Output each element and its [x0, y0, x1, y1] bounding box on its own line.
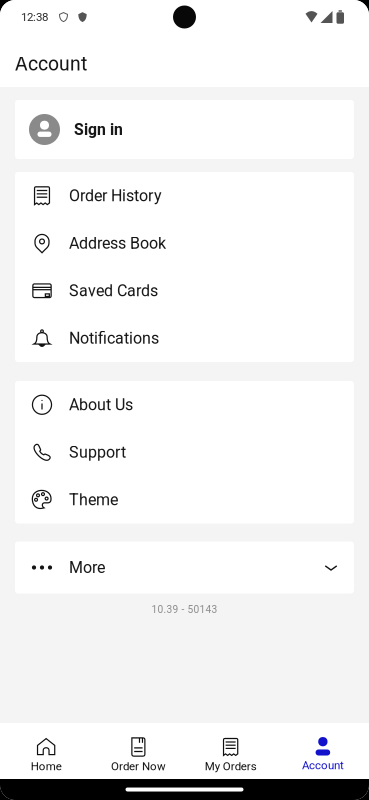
- staticText: 12:38: [21, 10, 48, 24]
- button[interactable]: Order History: [15, 172, 354, 219]
- staticText: More: [69, 558, 105, 577]
- button[interactable]: More: [15, 541, 354, 593]
- staticText: Order History: [69, 186, 162, 205]
- button[interactable]: Account: [277, 723, 369, 779]
- button[interactable]: Support: [15, 428, 354, 476]
- staticText: Support: [69, 443, 126, 462]
- staticText: Notifications: [69, 329, 159, 348]
- staticText: Account: [15, 53, 87, 75]
- button[interactable]: Saved Cards: [15, 267, 354, 314]
- staticText: 10.39 - 50143: [151, 603, 217, 615]
- staticText: Sign in: [74, 120, 123, 139]
- button[interactable]: My Orders: [184, 723, 277, 779]
- button[interactable]: About Us: [15, 381, 354, 428]
- button[interactable]: Notifications: [15, 314, 354, 362]
- button[interactable]: Address Book: [15, 219, 354, 267]
- staticText: My Orders: [205, 759, 257, 773]
- button[interactable]: Home: [0, 723, 92, 779]
- staticText: Home: [31, 759, 62, 773]
- staticText: Theme: [69, 490, 118, 509]
- button[interactable]: Sign in: [15, 100, 354, 159]
- button[interactable]: Order Now: [92, 723, 184, 779]
- staticText: About Us: [69, 395, 133, 414]
- staticText: Address Book: [69, 234, 166, 253]
- staticText: Order Now: [111, 759, 166, 773]
- staticText: Saved Cards: [69, 281, 158, 300]
- button[interactable]: Theme: [15, 476, 354, 523]
- staticText: Account: [302, 758, 344, 772]
